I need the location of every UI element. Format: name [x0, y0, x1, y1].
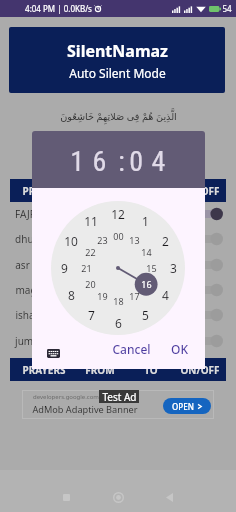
staticText: SilentNamaz	[67, 40, 168, 62]
staticText: 18	[113, 295, 124, 307]
staticText: Cancel	[112, 341, 151, 357]
button[interactable]: Back	[155, 483, 183, 511]
staticText: 4:04 PM | 0.0KB/s	[25, 3, 92, 14]
staticText: 12	[111, 206, 125, 222]
button[interactable]: 16	[32, 131, 205, 188]
staticText: Auto Silent Mode	[69, 65, 166, 81]
staticText: maghrib	[15, 283, 56, 297]
staticText: 1	[142, 213, 149, 229]
staticText: OPEN	[172, 401, 194, 412]
staticText: 16	[141, 278, 152, 290]
staticText: ON/OFF	[180, 363, 220, 377]
button[interactable]: maghrib	[10, 277, 226, 302]
staticText: 6	[115, 315, 122, 331]
staticText: FAJR	[15, 207, 36, 221]
staticText: dhuhr	[15, 232, 44, 246]
staticText: FROM	[85, 363, 115, 377]
staticText: PRAYERS	[22, 363, 66, 377]
staticText: 2	[162, 233, 169, 249]
staticText: 00	[113, 230, 124, 242]
staticText: developers.google.com	[33, 393, 99, 401]
button[interactable]: Recent apps	[52, 483, 80, 511]
staticText: 4	[162, 287, 169, 303]
staticText: asr	[15, 258, 30, 272]
button[interactable]: SilentNamaz	[9, 27, 225, 93]
staticText: PRAYERS	[22, 184, 66, 198]
button[interactable]: dhuhr	[10, 226, 226, 251]
button[interactable]: OPEN	[163, 398, 211, 414]
staticText: 16	[70, 145, 115, 178]
button[interactable]: jumua	[10, 328, 226, 353]
staticText: 15	[146, 262, 157, 274]
staticText: 17	[129, 290, 140, 302]
staticText: 9	[61, 260, 68, 276]
staticText: 22	[85, 246, 96, 258]
button[interactable]: FAJR	[10, 201, 226, 226]
staticText: TO	[144, 184, 158, 198]
staticText: 13	[129, 234, 140, 246]
button[interactable]: Cancel	[109, 339, 153, 359]
staticText: TO	[144, 363, 158, 377]
button[interactable]: Home	[104, 483, 132, 511]
staticText: 7	[88, 307, 95, 323]
staticText: isha	[15, 308, 35, 322]
staticText: OK	[171, 341, 188, 357]
button[interactable]: asr	[10, 252, 226, 277]
staticText: 54	[222, 3, 232, 14]
button[interactable]: Switch to text input	[45, 345, 61, 361]
staticText: 10	[64, 233, 78, 249]
staticText: 5	[142, 307, 149, 323]
staticText: 04	[129, 145, 174, 178]
staticText: 23	[97, 234, 108, 246]
staticText: 19	[97, 290, 108, 302]
staticText: 21	[81, 262, 92, 274]
button[interactable]: OK	[163, 339, 195, 359]
staticText: 3	[170, 260, 177, 276]
staticText: 20	[85, 278, 96, 290]
staticText: 11	[84, 213, 98, 229]
staticText: ON/OFF	[180, 184, 220, 198]
staticText: Test Ad	[102, 390, 137, 403]
staticText: FROM	[85, 184, 115, 198]
staticText: 14	[141, 246, 152, 258]
staticText: :	[118, 145, 125, 178]
button[interactable]: isha	[10, 302, 226, 327]
staticText: AdMob Adaptive Banner	[32, 403, 138, 416]
staticText: 8	[68, 287, 75, 303]
staticText: jumua	[15, 334, 45, 348]
staticText: الَّذِينَ هُمْ فِى صَلاتِهِمْ خَاشِعُونَ	[60, 110, 177, 123]
